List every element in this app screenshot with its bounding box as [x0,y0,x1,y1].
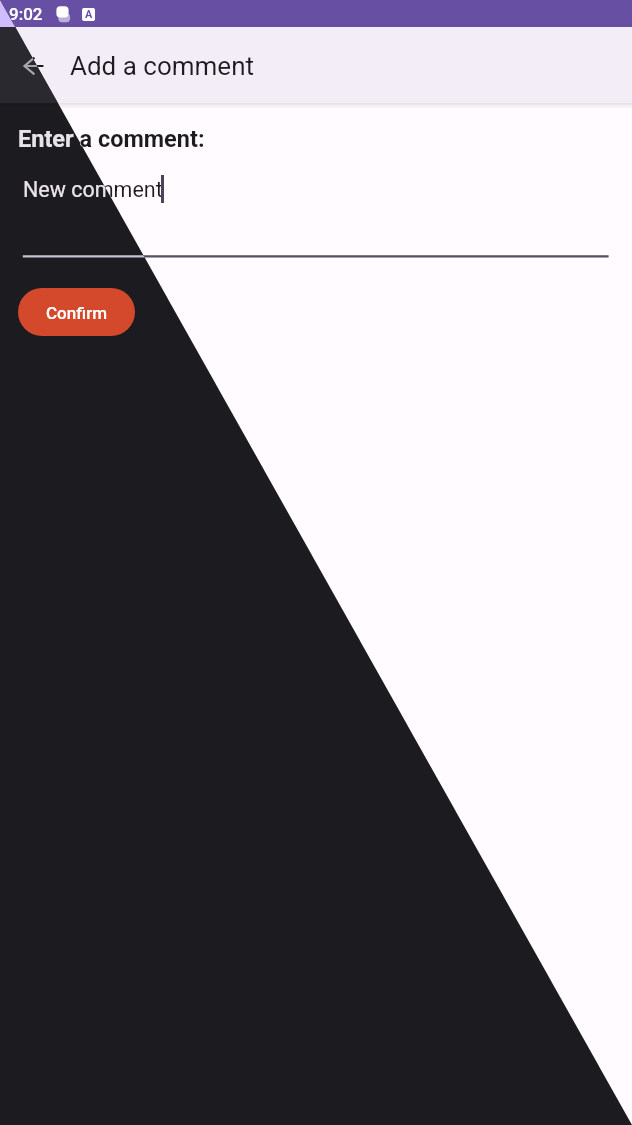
staticText: A [85,8,93,21]
staticText: Add a comment [70,51,255,81]
staticText: Enter a comment: [18,125,205,153]
button[interactable]: New comment [23,166,609,258]
button[interactable]: Back [11,43,59,91]
staticText: 9:02 [9,4,43,24]
staticText: New comment [23,177,163,202]
staticText: Add a comment [70,51,255,81]
staticText: Confirm [46,303,107,323]
staticText: 9:02 [9,4,43,24]
staticText: Enter a comment: [18,125,205,153]
staticText: A [85,8,93,21]
staticText: New comment [23,177,163,202]
button[interactable]: Confirm [18,288,135,336]
